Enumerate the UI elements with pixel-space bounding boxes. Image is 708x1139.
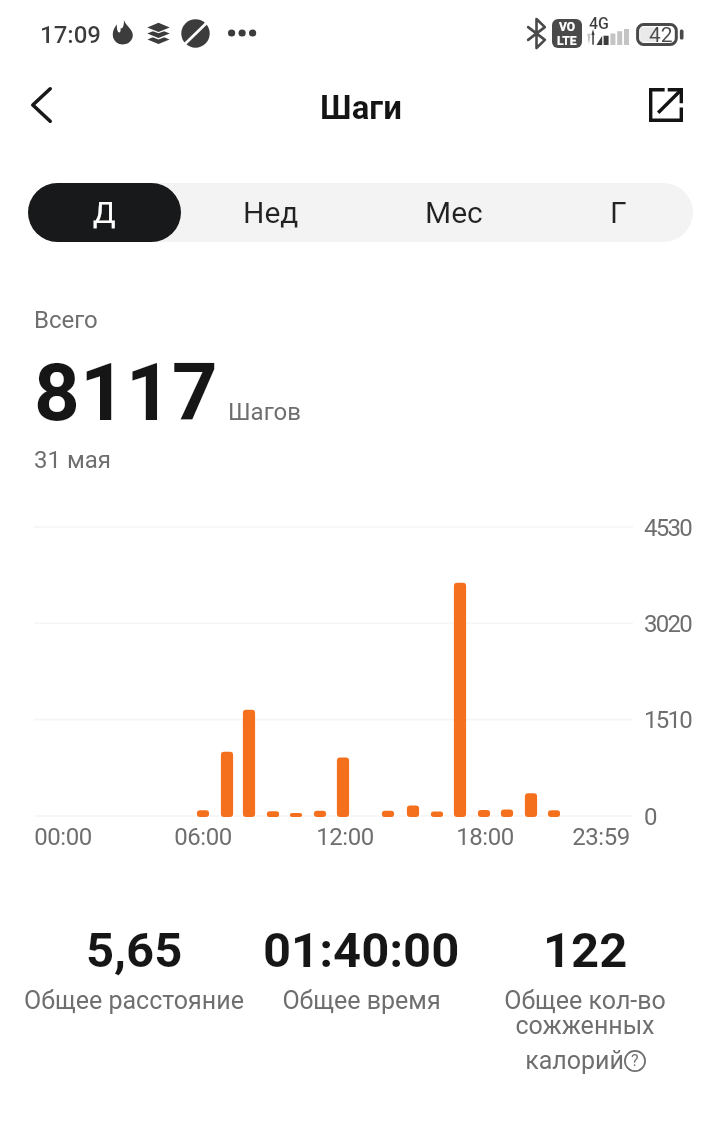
staticText: Всего bbox=[34, 306, 98, 334]
staticText: Г bbox=[610, 195, 627, 230]
button[interactable]: Share bbox=[636, 75, 696, 135]
staticText: 17:09 bbox=[40, 21, 101, 49]
staticText: 122 bbox=[543, 922, 628, 979]
staticText: 8117 bbox=[34, 346, 218, 440]
staticText: 4530 bbox=[644, 514, 692, 542]
button[interactable]: Help bbox=[450, 1046, 708, 1075]
staticText: Общее кол-во bbox=[504, 986, 666, 1015]
staticText: 0 bbox=[644, 803, 656, 831]
staticText: 42 bbox=[649, 23, 673, 46]
button[interactable]: Д bbox=[28, 183, 181, 242]
staticText: Д bbox=[93, 195, 116, 230]
staticText: LTE bbox=[557, 34, 577, 48]
button[interactable]: 01:40:00 bbox=[236, 922, 486, 1012]
button[interactable]: Back bbox=[11, 75, 71, 135]
staticText: VO bbox=[559, 20, 576, 34]
staticText: 06:00 bbox=[174, 823, 232, 851]
staticText: 31 мая bbox=[34, 446, 111, 474]
staticText: 18:00 bbox=[456, 823, 514, 851]
staticText: 1510 bbox=[644, 706, 692, 734]
button[interactable]: 5,65 bbox=[9, 922, 259, 1012]
staticText: Общее расстояние bbox=[24, 986, 244, 1015]
staticText: 5,65 bbox=[86, 922, 183, 979]
staticText: Общее время bbox=[282, 986, 441, 1015]
staticText: 3020 bbox=[644, 610, 692, 638]
staticText: калорий bbox=[525, 1046, 624, 1075]
staticText: ? bbox=[631, 1051, 639, 1070]
staticText: Нед bbox=[243, 195, 299, 230]
staticText: Мес bbox=[425, 195, 483, 230]
staticText: Шагов bbox=[228, 398, 301, 426]
staticText: 4G bbox=[589, 14, 609, 33]
staticText: 00:00 bbox=[34, 823, 92, 851]
staticText: Шаги bbox=[320, 88, 402, 127]
staticText: 23:59 bbox=[572, 823, 630, 851]
staticText: сожженных bbox=[515, 1011, 655, 1040]
button[interactable]: Нед bbox=[191, 183, 351, 242]
staticText: 01:40:00 bbox=[263, 922, 460, 979]
staticText: 12:00 bbox=[316, 823, 374, 851]
button[interactable]: 122 bbox=[460, 922, 708, 1012]
button[interactable]: Мес bbox=[374, 183, 534, 242]
button[interactable]: Г bbox=[538, 183, 698, 242]
